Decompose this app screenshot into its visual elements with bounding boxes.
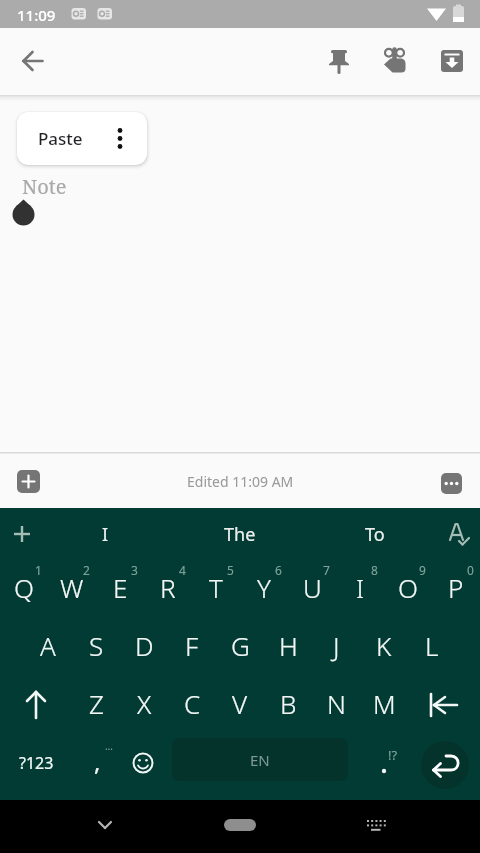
button[interactable]: !?	[360, 734, 408, 792]
staticText: 5	[227, 562, 234, 578]
button[interactable]	[428, 37, 476, 85]
button[interactable]: E	[96, 560, 144, 618]
button[interactable]: J	[312, 618, 360, 676]
button[interactable]: The	[195, 508, 285, 560]
staticText: C	[184, 686, 201, 721]
button[interactable]	[439, 515, 477, 553]
button[interactable]: T	[192, 560, 240, 618]
button[interactable]	[85, 805, 125, 845]
staticText: U	[303, 570, 322, 605]
staticText: To	[365, 522, 385, 547]
button[interactable]: To	[330, 508, 420, 560]
button[interactable]	[17, 470, 40, 493]
button[interactable]: A	[24, 618, 72, 676]
button[interactable]	[408, 676, 480, 734]
button[interactable]: EN	[172, 738, 348, 781]
staticText: 11:09	[17, 5, 56, 25]
button[interactable]: Paste	[17, 112, 147, 165]
button[interactable]: U	[288, 560, 336, 618]
button[interactable]: M	[360, 676, 408, 734]
staticText: M	[373, 686, 396, 721]
staticText: P	[448, 570, 464, 605]
staticText: K	[376, 628, 392, 663]
staticText: R	[160, 570, 176, 605]
staticText: 7	[323, 562, 330, 578]
button[interactable]: O	[384, 560, 432, 618]
staticText: E	[113, 570, 128, 605]
staticText: ?123	[19, 752, 54, 774]
button[interactable]: H	[264, 618, 312, 676]
button[interactable]: Q	[0, 560, 48, 618]
staticText: 0	[467, 562, 474, 578]
button[interactable]: F	[168, 618, 216, 676]
button[interactable]	[9, 37, 57, 85]
button[interactable]: Z	[72, 676, 120, 734]
staticText: Paste	[38, 127, 83, 150]
button[interactable]: K	[360, 618, 408, 676]
staticText: L	[425, 628, 439, 663]
staticText: !?	[388, 746, 398, 764]
staticText: H	[279, 628, 298, 663]
staticText: 9	[419, 562, 426, 578]
button[interactable]	[355, 805, 395, 845]
staticText: G	[231, 628, 250, 663]
button[interactable]: C	[168, 676, 216, 734]
staticText: The	[224, 522, 256, 547]
button[interactable]: ?123	[0, 734, 72, 792]
staticText: J	[333, 628, 340, 663]
button[interactable]	[0, 676, 72, 734]
staticText: A	[40, 628, 56, 663]
staticText: ,	[94, 745, 101, 778]
staticText: D	[135, 628, 154, 663]
button[interactable]: X	[120, 676, 168, 734]
button[interactable]	[3, 515, 41, 553]
button[interactable]: W	[48, 560, 96, 618]
staticText: EN	[250, 750, 270, 770]
staticText: Y	[257, 570, 271, 605]
staticText: 6	[275, 562, 282, 578]
staticText: T	[209, 570, 223, 605]
button[interactable]: ,	[72, 734, 120, 792]
button[interactable]: S	[72, 618, 120, 676]
staticText: 3	[131, 562, 138, 578]
staticText: Q	[14, 570, 34, 605]
button[interactable]	[441, 473, 462, 494]
staticText: Note	[22, 173, 67, 200]
staticText: F	[185, 628, 199, 663]
staticText: I	[356, 570, 365, 605]
staticText: N	[327, 686, 346, 721]
button[interactable]	[120, 734, 168, 792]
button[interactable]: N	[312, 676, 360, 734]
staticText: 8	[371, 562, 378, 578]
button[interactable]: B	[264, 676, 312, 734]
button[interactable]: I	[336, 560, 384, 618]
button[interactable]: G	[216, 618, 264, 676]
staticText: V	[232, 686, 248, 721]
button[interactable]: D	[120, 618, 168, 676]
button[interactable]: P	[432, 560, 480, 618]
staticText: 4	[179, 562, 186, 578]
staticText: X	[137, 686, 152, 721]
staticText: S	[89, 628, 104, 663]
staticText: Edited 11:09 AM	[187, 472, 294, 491]
staticText: W	[60, 570, 84, 605]
button[interactable]: I	[60, 508, 150, 560]
staticText: …	[105, 739, 113, 753]
staticText: B	[280, 686, 297, 721]
button[interactable]	[315, 37, 363, 85]
button[interactable]	[421, 741, 469, 789]
staticText: 1	[35, 562, 42, 578]
staticText: Z	[89, 686, 104, 721]
staticText: 2	[83, 562, 90, 578]
button[interactable]	[371, 37, 419, 85]
staticText: I	[102, 522, 109, 547]
button[interactable]: L	[408, 618, 456, 676]
button[interactable]	[224, 819, 256, 831]
button[interactable]: Y	[240, 560, 288, 618]
staticText: O	[398, 570, 418, 605]
button[interactable]: R	[144, 560, 192, 618]
button[interactable]: V	[216, 676, 264, 734]
